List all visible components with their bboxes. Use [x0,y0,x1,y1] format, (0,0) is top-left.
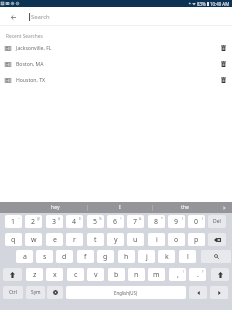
button[interactable]: 6 [107,215,124,228]
staticText: u [133,235,138,245]
staticText: o [174,235,179,245]
staticText: , [177,270,179,280]
staticText: v [94,270,98,280]
button[interactable]: x [46,268,63,281]
button[interactable]: Backspace [208,233,226,246]
button[interactable]: Next [210,286,228,299]
staticText: g [103,252,108,262]
staticText: . [197,270,199,280]
button[interactable]: g [97,250,114,263]
button[interactable]: Ctrl [3,286,23,299]
button[interactable]: 1 [5,215,22,228]
staticText: h [124,252,129,262]
button[interactable]: Shift [211,268,229,281]
button[interactable]: 2 [25,215,42,228]
button[interactable]: 9 [168,215,185,228]
button[interactable]: 4 [66,215,83,228]
staticText: d [62,252,67,262]
button[interactable]: u [127,233,144,246]
staticText: i [156,235,158,245]
staticText: 0 [194,217,199,227]
button[interactable]: 3 [46,215,63,228]
staticText: 4 [72,217,77,227]
button[interactable]: Back [6,10,20,24]
button[interactable]: f [77,250,94,263]
staticText: 3 [52,217,57,227]
button[interactable]: hey [23,202,87,213]
button[interactable]: Sym [26,286,45,299]
button[interactable]: the [153,202,217,213]
button[interactable]: b [108,268,125,281]
staticText: 2 [31,217,36,227]
button[interactable]: k [158,250,175,263]
button[interactable]: l [179,250,196,263]
button[interactable]: Delete recent search [217,57,229,71]
staticText: l [187,252,189,262]
staticText: Recent Searches [6,33,43,40]
staticText: 9 [174,217,179,227]
button[interactable]: Previous [189,286,207,299]
staticText: 6 [113,217,118,227]
staticText: m [153,270,160,280]
button[interactable]: More suggestions [217,202,232,213]
button[interactable]: Keyboard settings [47,286,63,299]
staticText: the [181,204,189,211]
button[interactable]: v [87,268,104,281]
staticText: Jacksonville, FL [16,45,52,52]
staticText: Houston, TX [16,77,46,84]
button[interactable]: 5 [87,215,104,228]
button[interactable]: e [46,233,63,246]
button[interactable]: , [169,268,186,281]
button[interactable]: . [189,268,206,281]
staticText: y [114,235,118,245]
staticText: & [139,217,142,221]
staticText: ! [183,270,184,274]
staticText: t [94,235,97,245]
button[interactable]: Delete recent search [217,73,229,87]
button[interactable]: 8 [148,215,165,228]
staticText: 1 [11,217,16,227]
button[interactable]: c [67,268,84,281]
staticText: k [165,252,169,262]
staticText: a [23,252,27,262]
button[interactable]: 0 [188,215,205,228]
staticText: ) [202,217,203,221]
button[interactable]: s [36,250,53,263]
button[interactable]: r [66,233,83,246]
button[interactable]: English(US) [66,286,186,299]
button[interactable]: j [138,250,155,263]
button[interactable]: q [5,233,22,246]
button[interactable]: Jacksonville, FL [0,40,232,56]
button[interactable]: p [188,233,205,246]
button[interactable]: m [148,268,165,281]
staticText: hey [51,204,60,211]
staticText: English(US) [114,290,138,296]
button[interactable]: Houston, TX [0,72,232,88]
button[interactable]: i [148,233,165,246]
button[interactable]: Shift [3,268,22,281]
button[interactable]: o [168,233,185,246]
staticText: 5 [93,217,98,227]
button[interactable]: t [87,233,104,246]
button[interactable]: y [107,233,124,246]
button[interactable]: w [25,233,42,246]
button[interactable]: d [56,250,73,263]
button[interactable]: Delete recent search [217,41,229,55]
staticText: % [99,217,102,221]
button[interactable]: 7 [127,215,144,228]
button[interactable]: Boston, MA [0,56,232,72]
button[interactable]: a [16,250,33,263]
button[interactable]: Del [208,215,226,228]
staticText: Del [213,218,221,225]
staticText: I [119,204,121,211]
button[interactable]: z [26,268,43,281]
button[interactable]: n [128,268,145,281]
button[interactable]: Search [29,7,48,26]
staticText: q [11,235,16,245]
staticText: $ [79,217,81,221]
button[interactable]: Search [201,250,231,263]
staticText: x [53,270,57,280]
button[interactable]: h [118,250,135,263]
staticText: n [134,270,139,280]
button[interactable]: I [88,202,152,213]
